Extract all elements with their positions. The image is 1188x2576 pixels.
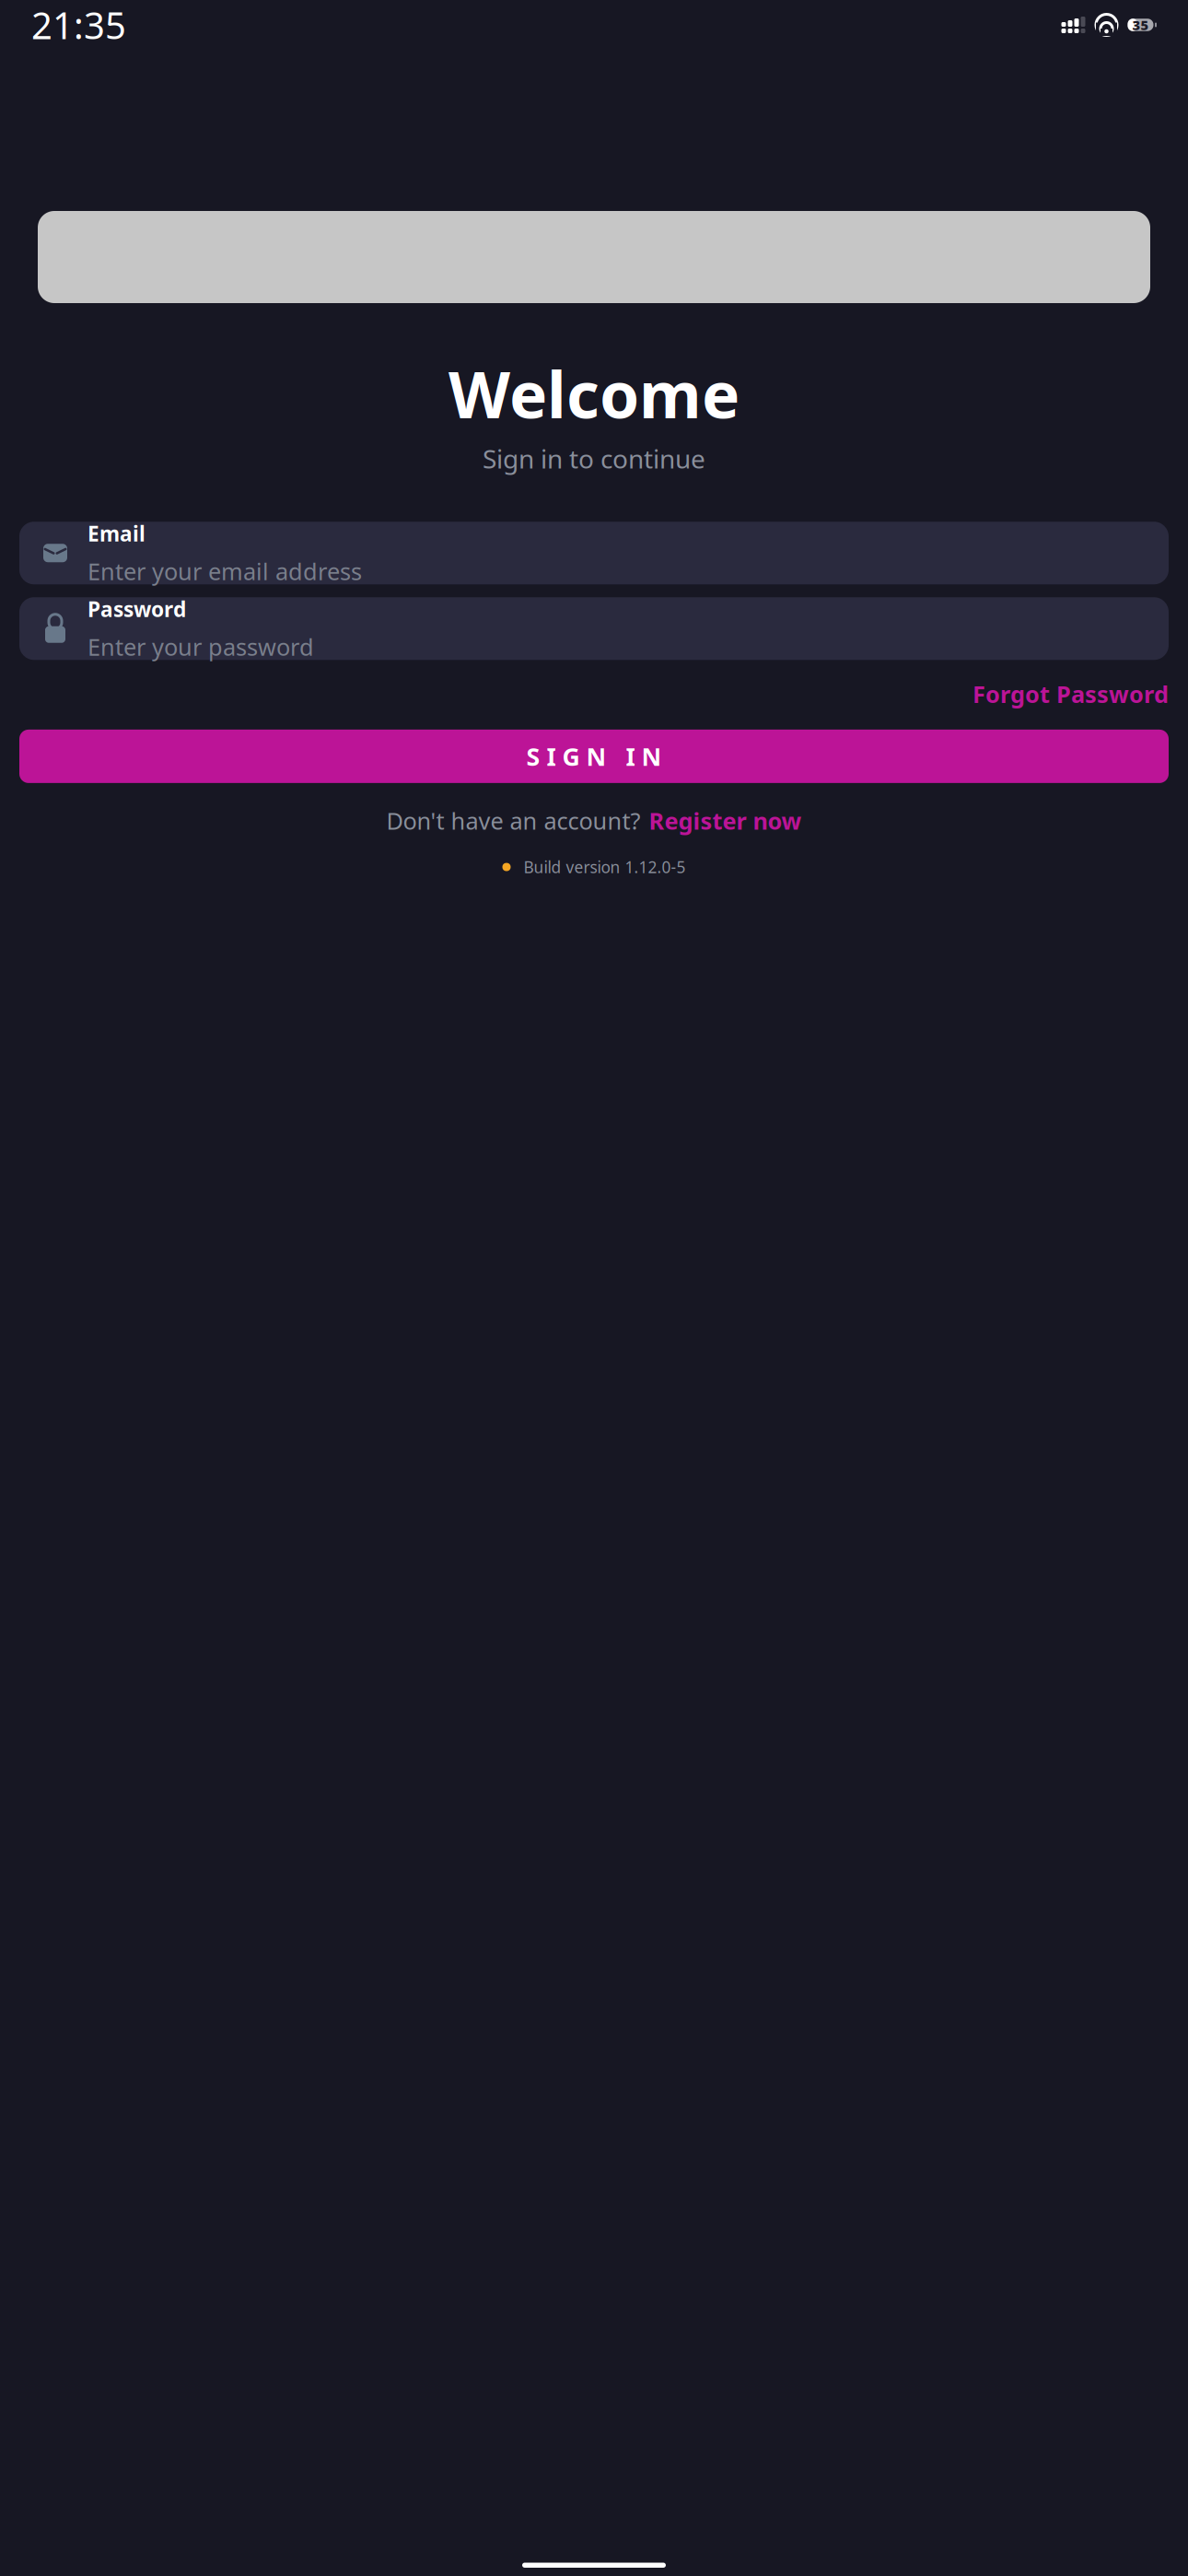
- staticText: 35: [1132, 16, 1149, 34]
- staticText: 21:35: [31, 0, 126, 49]
- staticText: Don't have an account?: [386, 805, 641, 836]
- staticText: Register now: [649, 805, 802, 836]
- staticText: Build version 1.12.0-5: [524, 856, 686, 878]
- staticText: Enter your email address: [87, 556, 362, 587]
- staticText: Password: [87, 595, 186, 623]
- staticText: S I G N I N: [526, 740, 662, 773]
- button[interactable]: Forgot Password: [973, 673, 1169, 715]
- button[interactable]: Register now: [649, 805, 802, 836]
- staticText: Enter your password: [87, 631, 314, 662]
- button[interactable]: Password: [19, 597, 1169, 660]
- staticText: Sign in to continue: [483, 441, 705, 476]
- staticText: Forgot Password: [973, 678, 1169, 709]
- button[interactable]: Email: [19, 522, 1169, 584]
- button[interactable]: S I G N I N: [19, 730, 1169, 783]
- staticText: Email: [87, 520, 146, 547]
- staticText: Welcome: [448, 351, 740, 436]
